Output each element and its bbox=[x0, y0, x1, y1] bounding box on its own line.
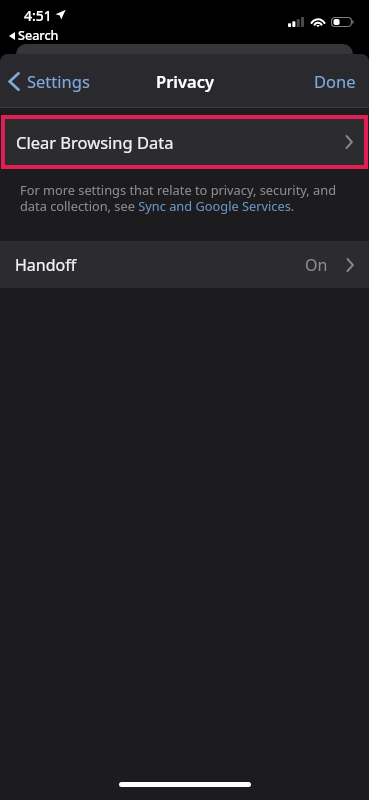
staticText: Privacy bbox=[156, 70, 214, 92]
other: Open Handoff bbox=[346, 258, 354, 272]
staticText: Search bbox=[18, 27, 59, 44]
button[interactable]: Clear Browsing Data bbox=[1, 115, 368, 169]
button[interactable]: Back to Settings bbox=[3, 62, 96, 100]
staticText: Handoff bbox=[15, 254, 77, 276]
other: Open Clear Browsing Data bbox=[345, 135, 353, 149]
staticText: Done bbox=[314, 70, 356, 92]
staticText: For more settings that relate to privacy… bbox=[20, 181, 357, 215]
staticText: Settings bbox=[27, 70, 90, 92]
staticText: On bbox=[305, 254, 328, 276]
staticText: Clear Browsing Data bbox=[16, 131, 174, 153]
staticText: 4:51 bbox=[24, 6, 52, 25]
button[interactable]: Done bbox=[309, 62, 361, 100]
button[interactable]: Handoff bbox=[0, 241, 369, 288]
